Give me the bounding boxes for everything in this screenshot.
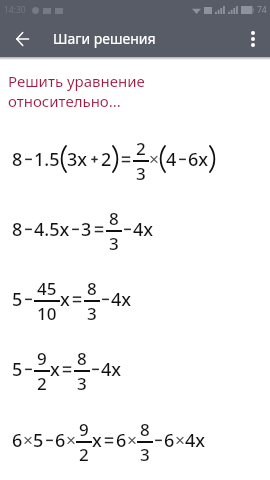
staticText: 2 <box>136 137 146 160</box>
staticText: 8 <box>12 217 23 242</box>
staticText: Шаги решения <box>53 29 156 48</box>
staticText: 2 <box>79 443 89 462</box>
staticText: 9 <box>79 418 89 441</box>
staticText: 6 <box>164 428 175 453</box>
staticText: Решить уравнение <box>8 71 145 91</box>
staticText: 10 <box>37 302 57 321</box>
staticText: 45 <box>37 277 57 300</box>
staticText: 14:30 <box>4 4 26 16</box>
staticText: 3x <box>67 147 88 172</box>
staticText: x <box>60 287 70 312</box>
staticText: 1.5 <box>34 147 60 172</box>
staticText: 3 <box>136 162 146 181</box>
staticText: 8 <box>87 277 97 300</box>
staticText: 8 <box>140 418 150 441</box>
staticText: 6x <box>188 147 209 172</box>
staticText: 3 <box>109 232 119 251</box>
staticText: 5 <box>12 357 23 382</box>
staticText: 4 <box>166 147 177 172</box>
staticText: 2 <box>101 147 112 172</box>
staticText: 3 <box>77 372 87 391</box>
staticText: x <box>92 428 102 453</box>
staticText: 2 <box>37 372 47 391</box>
button[interactable]: Back <box>0 20 40 57</box>
staticText: 4.5x <box>34 217 70 242</box>
staticText: 4x <box>133 217 154 242</box>
staticText: относительно... <box>8 91 121 111</box>
staticText: 3 <box>81 217 92 242</box>
staticText: 8 <box>109 207 119 230</box>
staticText: 4x <box>101 357 122 382</box>
staticText: 5 <box>33 428 44 453</box>
staticText: 4x <box>185 428 206 453</box>
staticText: 3 <box>140 443 150 462</box>
staticText: 4x <box>111 287 132 312</box>
staticText: 74 <box>257 4 267 16</box>
staticText: 8 <box>77 347 87 370</box>
staticText: 8 <box>12 147 23 172</box>
staticText: 6 <box>55 428 66 453</box>
staticText: 5 <box>12 287 23 312</box>
staticText: 3 <box>87 302 97 321</box>
staticText: x <box>50 357 60 382</box>
staticText: 6 <box>116 428 127 453</box>
staticText: 9 <box>37 347 47 370</box>
button[interactable]: More options <box>236 20 270 57</box>
staticText: 6 <box>12 428 23 453</box>
